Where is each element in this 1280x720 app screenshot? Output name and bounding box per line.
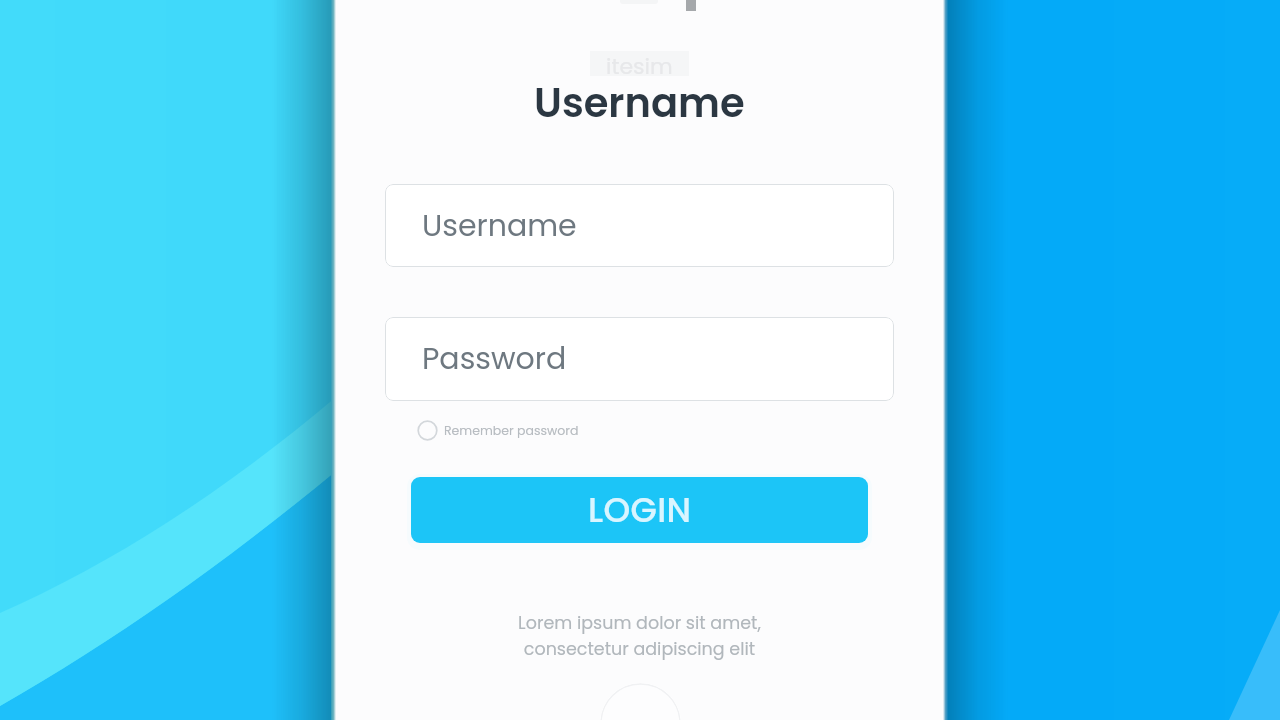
button[interactable]: Remember password <box>417 418 617 442</box>
button[interactable]: Username <box>385 184 894 267</box>
staticText: itesim <box>606 51 673 76</box>
staticText: Lorem ipsum dolor sit amet, consectetur … <box>518 611 761 661</box>
staticText: LOGIN <box>588 486 692 534</box>
button[interactable]: Password <box>385 317 894 401</box>
staticText: Username <box>534 75 745 131</box>
staticText: Username <box>422 205 577 247</box>
staticText: Remember password <box>444 422 579 439</box>
staticText: Password <box>422 338 567 380</box>
button[interactable]: LOGIN <box>411 477 868 543</box>
